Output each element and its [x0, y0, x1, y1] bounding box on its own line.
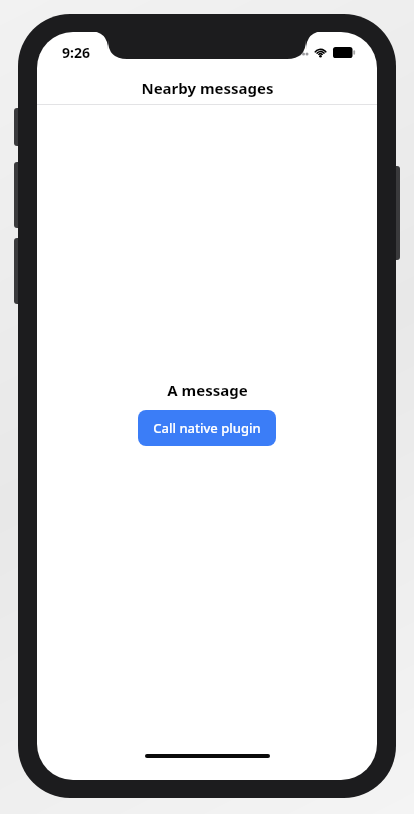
other: Home indicator — [145, 754, 270, 758]
staticText: Nearby messages — [141, 78, 274, 98]
staticText: 9:26 — [62, 43, 90, 62]
staticText: Call native plugin — [153, 419, 261, 437]
button[interactable]: Call native plugin — [138, 410, 276, 446]
staticText: A message — [167, 380, 248, 400]
